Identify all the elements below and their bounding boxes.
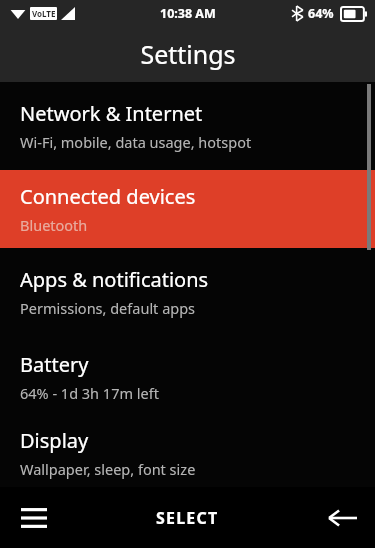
staticText: SELECT	[156, 507, 219, 529]
button[interactable]: Battery	[0, 336, 375, 418]
button[interactable]: Back	[321, 496, 365, 540]
staticText: 64% - 1d 3h 17m left	[20, 383, 159, 403]
staticText: Settings	[140, 37, 236, 71]
staticText: Permissions, default apps	[20, 298, 196, 318]
staticText: 10:38 AM	[160, 5, 216, 22]
staticText: Display	[20, 427, 89, 454]
staticText: Network & Internet	[20, 100, 203, 127]
staticText: Apps & notifications	[20, 266, 209, 293]
button[interactable]: Connected devices	[0, 170, 375, 248]
staticText: 64%	[308, 5, 334, 22]
staticText: Battery	[20, 351, 89, 378]
button[interactable]: Apps & notifications	[0, 248, 375, 336]
staticText: Wallpaper, sleep, font size	[20, 459, 196, 479]
button[interactable]: Menu	[12, 496, 56, 540]
button[interactable]: Display	[0, 418, 375, 487]
staticText: Connected devices	[20, 183, 196, 210]
button[interactable]: SELECT	[136, 497, 239, 539]
staticText: VoLTE	[32, 8, 56, 19]
staticText: Wi-Fi, mobile, data usage, hotspot	[20, 132, 252, 152]
staticText: Bluetooth	[20, 215, 88, 235]
button[interactable]: Network & Internet	[0, 82, 375, 170]
